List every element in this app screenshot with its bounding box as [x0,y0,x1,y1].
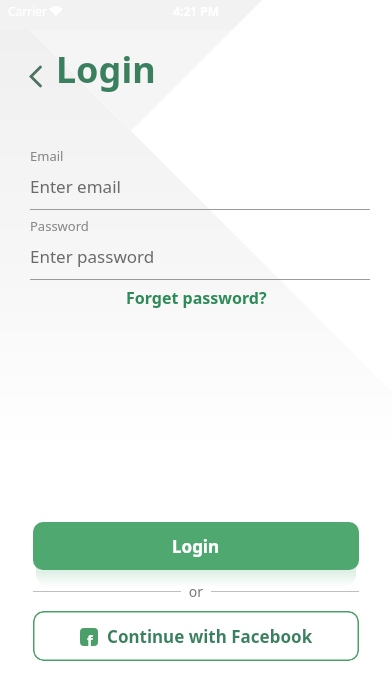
staticText: Login [56,45,156,94]
button[interactable]: Enter email [30,172,370,210]
staticText: Carrier [8,3,48,19]
staticText: or [0,582,392,601]
staticText: Continue with Facebook [107,625,313,648]
staticText: f [87,630,93,646]
button[interactable]: Enter password [30,242,370,280]
staticText: 4:21 PM [0,3,392,19]
button[interactable]: Forget password? [0,285,392,311]
staticText: Forget password? [126,287,267,309]
staticText: Password [30,217,89,235]
staticText: Enter password [30,245,155,268]
staticText: Enter email [30,175,121,198]
staticText: Email [30,147,64,165]
button[interactable]: Login [33,522,359,570]
button[interactable] [20,58,50,94]
button[interactable]: f [33,611,359,661]
staticText: Login [172,535,220,558]
